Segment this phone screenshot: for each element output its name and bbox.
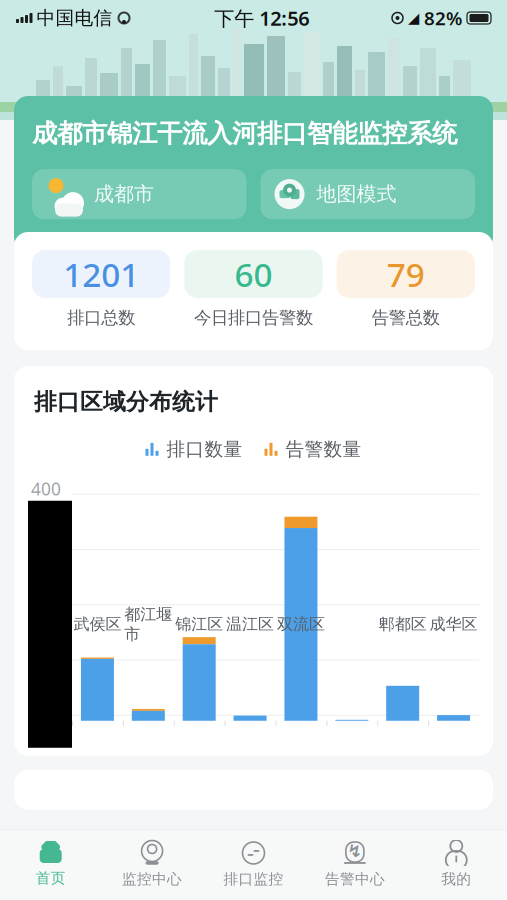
staticText: 成都市: [94, 182, 154, 206]
staticText: 1201: [63, 252, 139, 296]
staticText: 监控中心: [122, 870, 182, 888]
staticText: 82%: [424, 6, 462, 30]
staticText: 排口区域分布统计: [34, 388, 218, 416]
button[interactable]: ↯: [304, 834, 406, 896]
button[interactable]: 我的: [406, 834, 507, 896]
staticText: 首页: [36, 869, 66, 887]
staticText: 地图模式: [316, 182, 396, 206]
staticText: 成都市锦江干流入河排口智能监控系统: [32, 118, 457, 149]
staticText: 中国电信: [36, 6, 112, 29]
staticText: 排口监控: [223, 870, 283, 888]
staticText: 排口数量: [166, 438, 242, 461]
staticText: 下午 12:56: [214, 5, 309, 31]
staticText: 60: [234, 252, 272, 296]
staticText: 我的: [441, 870, 471, 888]
staticText: 告警中心: [325, 870, 385, 888]
staticText: 400: [31, 477, 61, 500]
staticText: ◢: [408, 10, 419, 26]
staticText: 武侯区: [73, 614, 121, 634]
button[interactable]: 地图模式: [260, 169, 475, 219]
staticText: 锦江区: [175, 614, 223, 634]
staticText: 郫都区: [379, 614, 427, 634]
staticText: 告警总数: [372, 307, 440, 328]
staticText: 排口总数: [67, 307, 135, 328]
button[interactable]: 首页: [0, 835, 101, 895]
button[interactable]: 排口监控: [203, 834, 304, 896]
staticText: 都江堰市: [124, 605, 172, 644]
staticText: 79: [387, 252, 425, 296]
staticText: ↯: [347, 841, 362, 861]
button[interactable]: 监控中心: [101, 834, 203, 896]
staticText: 今日排口告警数: [194, 307, 313, 328]
staticText: 成华区: [430, 614, 478, 634]
staticText: 双流区: [277, 614, 325, 634]
button[interactable]: 成都市: [32, 169, 246, 219]
staticText: 告警数量: [285, 438, 361, 461]
staticText: 温江区: [226, 614, 274, 634]
